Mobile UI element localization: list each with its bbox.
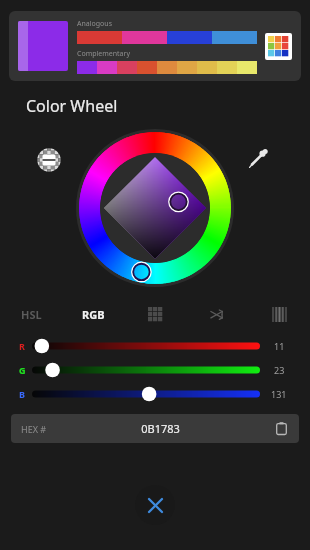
staticText: Color Wheel xyxy=(26,95,118,117)
staticText: R xyxy=(19,340,25,352)
button[interactable]: RGB xyxy=(62,299,124,329)
staticText: 131 xyxy=(271,388,287,400)
button[interactable] xyxy=(18,21,68,71)
button[interactable]: Swatches xyxy=(124,299,186,329)
staticText: HEX # xyxy=(21,423,47,435)
staticText: B xyxy=(19,388,25,400)
button[interactable]: R xyxy=(0,334,310,358)
button[interactable]: HEX # xyxy=(11,414,299,443)
staticText: G xyxy=(19,364,26,376)
button[interactable]: Copy xyxy=(274,421,289,436)
staticText: Complementary xyxy=(77,49,130,59)
button[interactable]: Palettes xyxy=(268,36,289,57)
button[interactable]: HSL xyxy=(0,299,62,329)
staticText: RGB xyxy=(82,307,105,322)
button[interactable] xyxy=(77,31,257,44)
button[interactable]: Eyedropper xyxy=(246,147,270,171)
button[interactable] xyxy=(77,61,257,74)
button[interactable]: Close xyxy=(135,485,175,525)
staticText: 23 xyxy=(274,364,285,376)
button[interactable]: G xyxy=(0,358,310,382)
staticText: HSL xyxy=(21,307,42,322)
button[interactable]: Opacity xyxy=(36,147,62,173)
button[interactable]: Shuffle xyxy=(186,299,248,329)
staticText: Analogous xyxy=(77,19,112,29)
button[interactable] xyxy=(76,129,234,287)
button[interactable]: Gradients xyxy=(248,299,310,329)
staticText: 0B1783 xyxy=(47,421,274,436)
staticText: 11 xyxy=(274,340,285,352)
button[interactable]: B xyxy=(0,382,310,406)
